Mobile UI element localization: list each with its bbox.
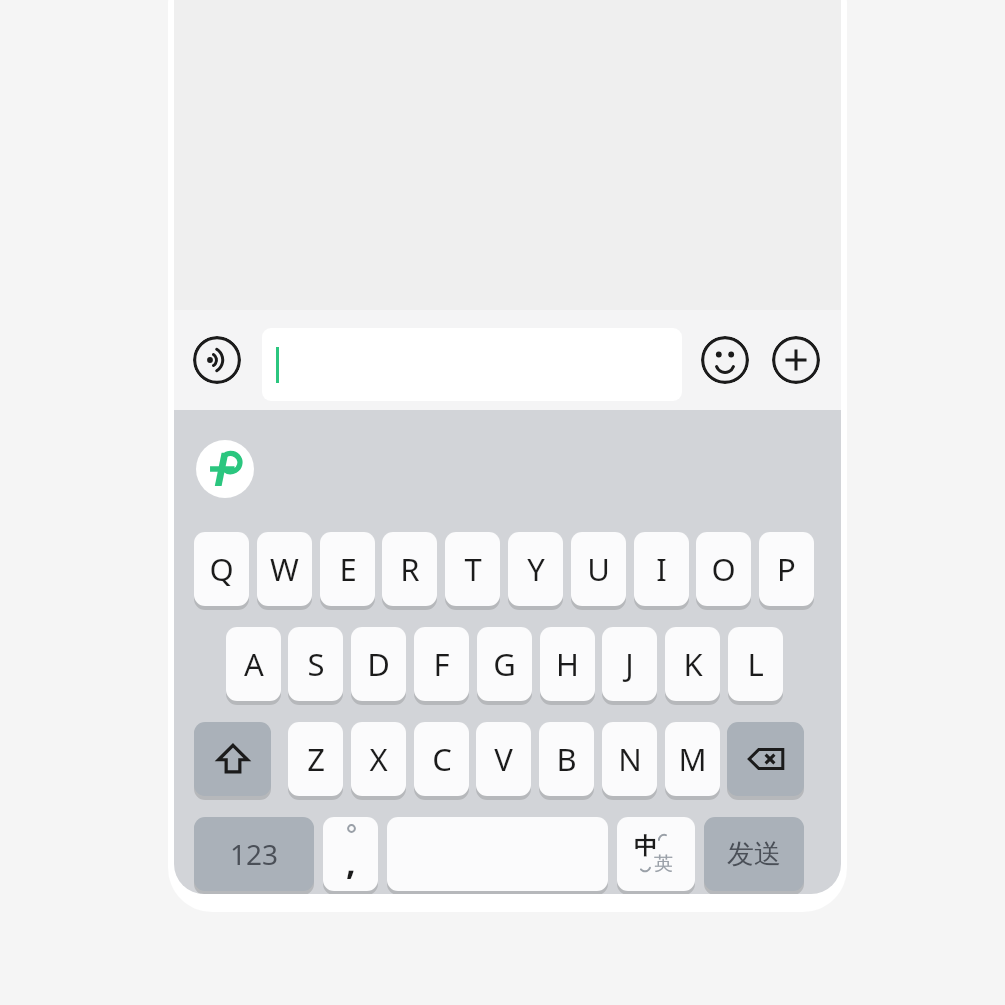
button[interactable]: B [539,722,594,796]
staticText: F [433,643,450,685]
button[interactable]: X [351,722,406,796]
button[interactable]: G [477,627,532,701]
staticText: G [493,643,516,685]
staticText: K [683,643,703,685]
staticText: E [339,548,357,590]
staticText: V [494,738,513,780]
button[interactable]: H [540,627,595,701]
button[interactable]: T [445,532,500,606]
button[interactable]: Numbers [194,817,314,891]
button[interactable]: R [382,532,437,606]
button[interactable]: L [728,627,783,701]
staticText: 中 [634,832,657,861]
button[interactable]: Punctuation [323,817,378,891]
button[interactable]: Input method [196,440,254,498]
staticText: H [556,643,579,685]
button[interactable]: U [571,532,626,606]
staticText: R [400,548,420,590]
button[interactable]: J [602,627,657,701]
staticText: Q [209,548,234,590]
staticText: N [618,738,642,780]
button[interactable]: N [602,722,657,796]
staticText: A [244,643,264,685]
staticText: U [587,548,610,590]
staticText: X [369,738,388,780]
staticText: Z [307,738,325,780]
staticText: Y [527,548,545,590]
staticText: C [432,738,452,780]
staticText: L [747,643,764,685]
staticText: W [270,548,299,590]
button[interactable]: I [634,532,689,606]
staticText: , [346,839,356,885]
button[interactable]: C [414,722,469,796]
staticText: 发送 [727,837,781,871]
staticText: P [777,548,796,590]
button[interactable]: D [351,627,406,701]
button[interactable]: Voice input [193,336,241,384]
button[interactable]: P [759,532,814,606]
button[interactable]: Switch Chinese English [617,817,695,891]
button[interactable]: S [288,627,343,701]
staticText: S [307,643,325,685]
staticText: T [464,548,482,590]
button[interactable]: K [665,627,720,701]
button[interactable]: M [665,722,720,796]
button[interactable]: Z [288,722,343,796]
staticText: D [367,643,390,685]
button[interactable]: E [320,532,375,606]
button[interactable]: Backspace [727,722,804,796]
button[interactable]: F [414,627,469,701]
button[interactable]: A [226,627,281,701]
button[interactable]: More [772,336,820,384]
button[interactable]: Space [387,817,608,891]
staticText: J [625,643,634,685]
staticText: 英 [654,852,673,876]
button[interactable]: Emoji [701,336,749,384]
button[interactable]: V [476,722,531,796]
button[interactable]: Q [194,532,249,606]
staticText: 123 [230,835,279,873]
button[interactable]: Send [704,817,804,891]
button[interactable]: W [257,532,312,606]
button[interactable]: O [696,532,751,606]
button[interactable]: Shift [194,722,271,796]
button[interactable]: Y [508,532,563,606]
button[interactable] [262,328,682,401]
staticText: B [556,738,577,780]
staticText: M [678,738,707,780]
staticText: I [656,548,667,590]
staticText: O [711,548,736,590]
